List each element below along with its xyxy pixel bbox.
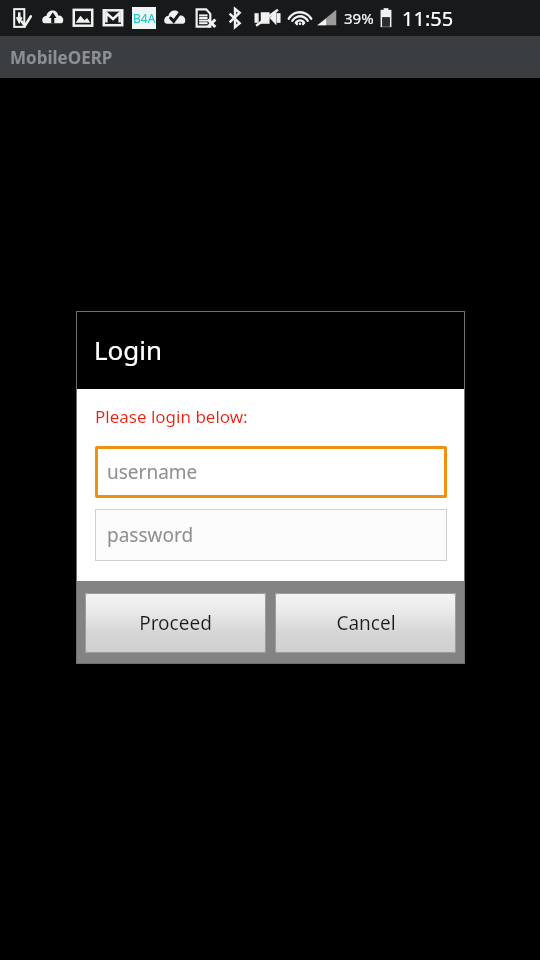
staticText: Cancel [336, 610, 396, 636]
staticText: B4A [133, 10, 156, 26]
staticText: Please login below: [95, 405, 248, 428]
staticText: Proceed [139, 610, 212, 636]
button[interactable]: Proceed [85, 593, 266, 653]
staticText: 39% [344, 8, 374, 28]
staticText: MobileOERP [10, 46, 113, 69]
button[interactable]: Cancel [275, 593, 456, 653]
button[interactable]: password [95, 509, 447, 561]
button[interactable]: username [95, 446, 447, 498]
staticText: password [107, 522, 194, 548]
staticText: 11:55 [402, 5, 454, 32]
staticText: Login [94, 332, 163, 367]
staticText: username [107, 459, 198, 485]
